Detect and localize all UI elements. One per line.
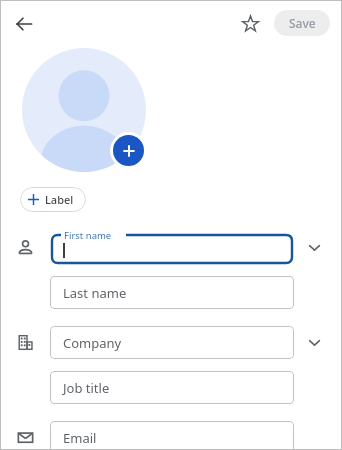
- button[interactable]: Save: [274, 10, 330, 36]
- staticText: Company: [63, 334, 122, 352]
- button[interactable]: Expand: [302, 235, 326, 259]
- staticText: Save: [289, 15, 316, 31]
- staticText: Last name: [63, 284, 127, 302]
- button[interactable]: Contact photo: [22, 48, 146, 172]
- button[interactable]: Expand: [302, 330, 326, 354]
- button[interactable]: Add photo: [113, 135, 144, 166]
- button[interactable]: Job title: [50, 371, 294, 404]
- staticText: Job title: [63, 379, 110, 397]
- button[interactable]: Email: [50, 421, 294, 450]
- button[interactable]: Last name: [50, 276, 294, 309]
- staticText: Email: [63, 429, 97, 447]
- staticText: Label: [45, 192, 74, 207]
- staticText: First name: [64, 229, 112, 242]
- button[interactable]: Back: [10, 10, 38, 38]
- button[interactable]: First name: [50, 228, 294, 266]
- button[interactable]: Company: [50, 326, 294, 359]
- button[interactable]: Label: [20, 187, 86, 212]
- button[interactable]: Favorite: [236, 9, 264, 37]
